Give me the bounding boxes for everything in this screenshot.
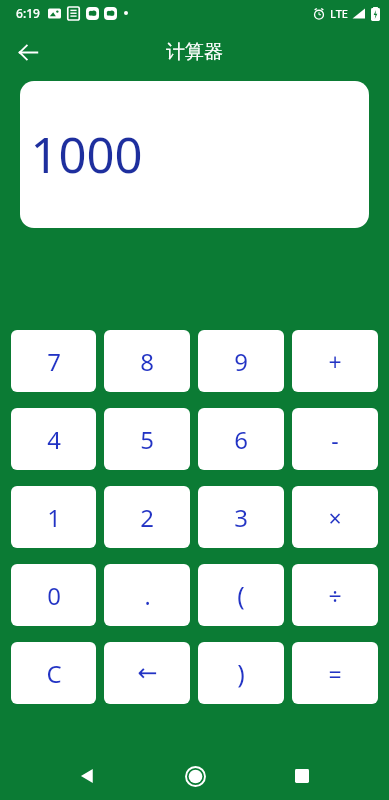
button[interactable]: ) xyxy=(198,642,284,704)
staticText: 2 xyxy=(140,501,154,534)
button[interactable]: Back xyxy=(9,33,47,71)
staticText: 7 xyxy=(47,345,61,378)
staticText: ← xyxy=(137,659,158,687)
button[interactable]: 5 xyxy=(104,408,190,470)
button[interactable]: Home xyxy=(178,759,212,793)
button[interactable]: 1000 xyxy=(20,81,369,228)
button[interactable]: = xyxy=(292,642,378,704)
staticText: = xyxy=(328,658,342,689)
staticText: 9 xyxy=(234,345,248,378)
staticText: 8 xyxy=(140,345,154,378)
button[interactable]: × xyxy=(292,486,378,548)
staticText: . xyxy=(144,580,151,611)
button[interactable]: 4 xyxy=(11,408,96,470)
button[interactable]: + xyxy=(292,330,378,392)
staticText: C xyxy=(46,657,62,690)
button[interactable]: Back xyxy=(70,759,104,793)
staticText: 6 xyxy=(234,423,248,456)
button[interactable]: ÷ xyxy=(292,564,378,626)
button[interactable]: 0 xyxy=(11,564,96,626)
button[interactable]: ( xyxy=(198,564,284,626)
staticText: ( xyxy=(237,578,245,612)
button[interactable]: 1 xyxy=(11,486,96,548)
staticText: ÷ xyxy=(328,580,342,611)
button[interactable]: ← xyxy=(104,642,190,704)
staticText: 3 xyxy=(234,501,248,534)
staticText: + xyxy=(328,346,342,377)
button[interactable]: 9 xyxy=(198,330,284,392)
button[interactable]: 6 xyxy=(198,408,284,470)
staticText: 5 xyxy=(140,423,154,456)
button[interactable]: 7 xyxy=(11,330,96,392)
staticText: 1 xyxy=(47,501,61,534)
button[interactable]: 8 xyxy=(104,330,190,392)
staticText: ) xyxy=(237,656,245,690)
staticText: 4 xyxy=(47,423,61,456)
staticText: - xyxy=(331,424,339,455)
button[interactable]: 3 xyxy=(198,486,284,548)
button[interactable]: - xyxy=(292,408,378,470)
staticText: 计算器 xyxy=(166,40,223,64)
staticText: 6:19 xyxy=(16,5,40,21)
staticText: 0 xyxy=(47,579,61,612)
button[interactable]: 2 xyxy=(104,486,190,548)
staticText: LTE xyxy=(330,6,348,21)
button[interactable]: . xyxy=(104,564,190,626)
button[interactable]: Recent apps xyxy=(285,759,319,793)
staticText: 1000 xyxy=(30,121,143,188)
button[interactable]: C xyxy=(11,642,96,704)
staticText: × xyxy=(328,502,342,533)
